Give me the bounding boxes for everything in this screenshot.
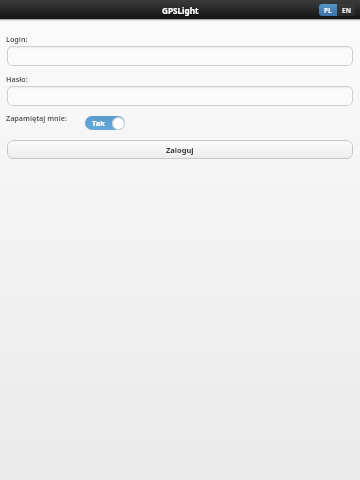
staticText: Tak — [92, 118, 105, 128]
button[interactable]: Hasło — [7, 86, 353, 106]
staticText: PL — [324, 6, 332, 15]
staticText: Zaloguj — [166, 145, 194, 155]
button[interactable]: Login — [7, 46, 353, 66]
staticText: GPSLight — [162, 5, 199, 16]
staticText: EN — [342, 6, 351, 15]
staticText: Hasło: — [6, 74, 28, 84]
button[interactable]: Zaloguj — [7, 140, 353, 159]
staticText: Login: — [6, 34, 28, 44]
button[interactable]: EN — [337, 4, 355, 16]
button[interactable]: Zapamiętaj mnie: Tak — [85, 116, 125, 130]
button[interactable]: PL — [319, 4, 337, 16]
staticText: Zapamiętaj mnie: — [6, 113, 67, 123]
